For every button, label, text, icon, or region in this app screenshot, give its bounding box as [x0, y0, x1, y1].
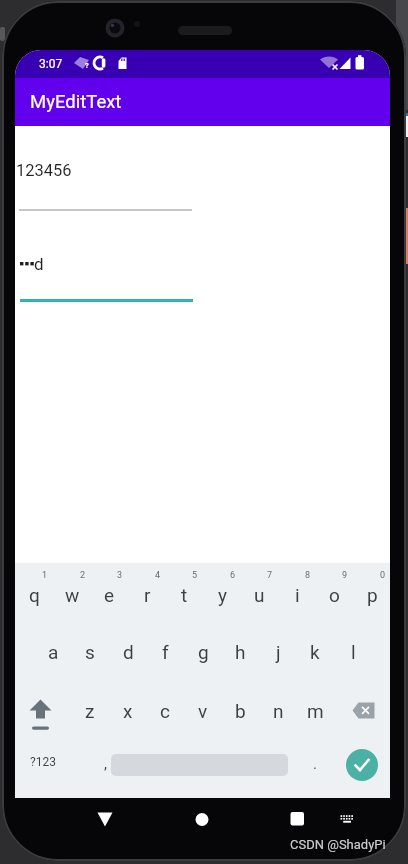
- staticText: h: [235, 641, 246, 663]
- staticText: s: [85, 641, 95, 663]
- staticText: 3: [117, 570, 123, 581]
- button[interactable]: [182, 802, 222, 838]
- button[interactable]: z: [71, 681, 109, 740]
- button[interactable]: c: [146, 681, 184, 740]
- button[interactable]: k: [296, 622, 334, 681]
- button[interactable]: [277, 802, 317, 838]
- staticText: ?123: [30, 755, 56, 769]
- staticText: b: [235, 700, 246, 722]
- button[interactable]: w: [53, 565, 91, 624]
- staticText: l: [351, 641, 356, 663]
- staticText: 123456: [16, 161, 72, 180]
- button[interactable]: y: [203, 565, 241, 624]
- button[interactable]: p: [353, 565, 391, 624]
- button[interactable]: e: [90, 565, 128, 624]
- staticText: w: [65, 584, 80, 606]
- staticText: m: [307, 700, 324, 722]
- staticText: 4: [155, 570, 161, 581]
- button[interactable]: v: [184, 681, 222, 740]
- button[interactable]: ,: [86, 735, 124, 793]
- button[interactable]: o: [315, 565, 353, 624]
- staticText: .: [313, 755, 317, 773]
- staticText: v: [198, 700, 208, 722]
- staticText: j: [276, 641, 281, 663]
- staticText: 7: [267, 570, 273, 581]
- staticText: o: [329, 584, 340, 606]
- button[interactable]: q: [15, 565, 53, 624]
- staticText: t: [181, 584, 188, 606]
- button[interactable]: m: [296, 681, 334, 740]
- staticText: k: [310, 641, 320, 663]
- button[interactable]: x: [109, 681, 147, 740]
- staticText: n: [273, 700, 284, 722]
- button[interactable]: [331, 804, 361, 832]
- staticText: 1: [42, 570, 48, 581]
- staticText: ?: [85, 61, 89, 70]
- staticText: ,: [104, 755, 107, 773]
- button[interactable]: s: [71, 622, 109, 681]
- staticText: MyEditText: [30, 91, 122, 113]
- staticText: y: [218, 584, 227, 606]
- button[interactable]: [20, 246, 193, 302]
- staticText: 2: [80, 570, 86, 581]
- button[interactable]: [15, 681, 71, 740]
- staticText: p: [367, 584, 378, 606]
- staticText: q: [29, 584, 40, 606]
- button[interactable]: [334, 681, 390, 740]
- staticText: 8: [305, 570, 311, 581]
- button[interactable]: t: [165, 565, 203, 624]
- button[interactable]: h: [221, 622, 259, 681]
- staticText: g: [198, 641, 209, 663]
- staticText: d: [123, 641, 134, 663]
- staticText: i: [295, 584, 300, 606]
- button[interactable]: ?123: [15, 742, 71, 782]
- staticText: u: [254, 584, 265, 606]
- staticText: 3:07: [39, 57, 63, 71]
- button[interactable]: [86, 802, 126, 838]
- button[interactable]: r: [128, 565, 166, 624]
- button[interactable]: l: [334, 622, 372, 681]
- button[interactable]: a: [34, 622, 72, 681]
- staticText: x: [123, 700, 133, 722]
- button[interactable]: b: [221, 681, 259, 740]
- staticText: r: [144, 584, 151, 606]
- staticText: z: [85, 700, 95, 722]
- button[interactable]: i: [278, 565, 316, 624]
- staticText: c: [160, 700, 170, 722]
- button[interactable]: [19, 154, 192, 213]
- staticText: a: [48, 641, 59, 663]
- button[interactable]: u: [240, 565, 278, 624]
- button[interactable]: .: [296, 735, 334, 793]
- staticText: 9: [342, 570, 348, 581]
- staticText: 6: [230, 570, 236, 581]
- button[interactable]: [346, 749, 378, 781]
- button[interactable]: n: [259, 681, 297, 740]
- staticText: d: [34, 254, 44, 274]
- button[interactable]: j: [259, 622, 297, 681]
- staticText: e: [104, 584, 115, 606]
- staticText: 0: [380, 570, 386, 581]
- button[interactable]: f: [146, 622, 184, 681]
- staticText: CSDN @ShadyPi: [290, 837, 386, 852]
- button[interactable]: d: [109, 622, 147, 681]
- staticText: 5: [192, 570, 198, 581]
- staticText: f: [162, 641, 169, 663]
- button[interactable]: g: [184, 622, 222, 681]
